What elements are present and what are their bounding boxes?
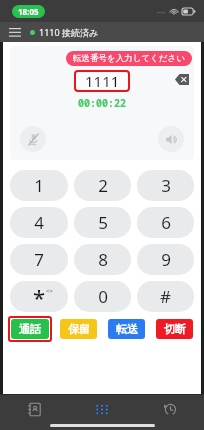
button[interactable]: * — [10, 281, 68, 312]
button[interactable]: Contacts — [0, 394, 68, 424]
staticText: 00:00:22 — [78, 96, 126, 110]
button[interactable]: 保留 — [60, 319, 97, 339]
staticText: 1110 接続済み — [39, 26, 99, 38]
button[interactable]: 8 — [74, 244, 131, 275]
staticText: 8 — [98, 248, 108, 271]
button[interactable]: 2 — [74, 170, 131, 201]
staticText: 9 — [161, 248, 171, 271]
staticText: 7 — [34, 248, 44, 271]
staticText: 保留 — [68, 322, 90, 336]
staticText: 転送番号を入力してください — [73, 53, 185, 64]
button[interactable]: 1 — [10, 170, 68, 201]
staticText: 1 — [34, 174, 44, 197]
staticText: # — [160, 285, 171, 308]
staticText: 18:05 — [18, 6, 39, 17]
button[interactable]: 通話 — [11, 319, 49, 339]
staticText: 通話 — [19, 322, 41, 336]
button[interactable]: 9 — [137, 244, 194, 275]
staticText: 転送 — [116, 322, 138, 336]
button[interactable]: 切断 — [156, 319, 193, 339]
button[interactable]: 4 — [10, 207, 68, 238]
button[interactable]: 7 — [10, 244, 68, 275]
button[interactable]: 転送 — [108, 319, 145, 339]
button[interactable]: # — [137, 281, 194, 312]
staticText: 0 — [98, 285, 108, 308]
staticText: <> — [46, 287, 53, 295]
staticText: 切断 — [164, 322, 186, 336]
button[interactable]: Backspace — [175, 74, 189, 85]
staticText: 1111 — [85, 71, 120, 91]
button[interactable]: 0 — [74, 281, 131, 312]
button[interactable]: 5 — [74, 207, 131, 238]
staticText: * — [33, 282, 46, 312]
button[interactable]: Speaker — [158, 126, 184, 152]
button[interactable]: 3 — [137, 170, 194, 201]
staticText: 6 — [161, 211, 171, 234]
staticText: 3 — [161, 174, 171, 197]
button[interactable]: 6 — [137, 207, 194, 238]
button[interactable]: History — [136, 394, 204, 424]
button[interactable]: Menu — [7, 24, 23, 40]
staticText: 4 — [34, 211, 44, 234]
button[interactable]: Mute — [20, 126, 46, 152]
button[interactable]: Dialpad — [68, 394, 136, 424]
staticText: 5 — [98, 211, 108, 234]
staticText: 2 — [98, 174, 108, 197]
